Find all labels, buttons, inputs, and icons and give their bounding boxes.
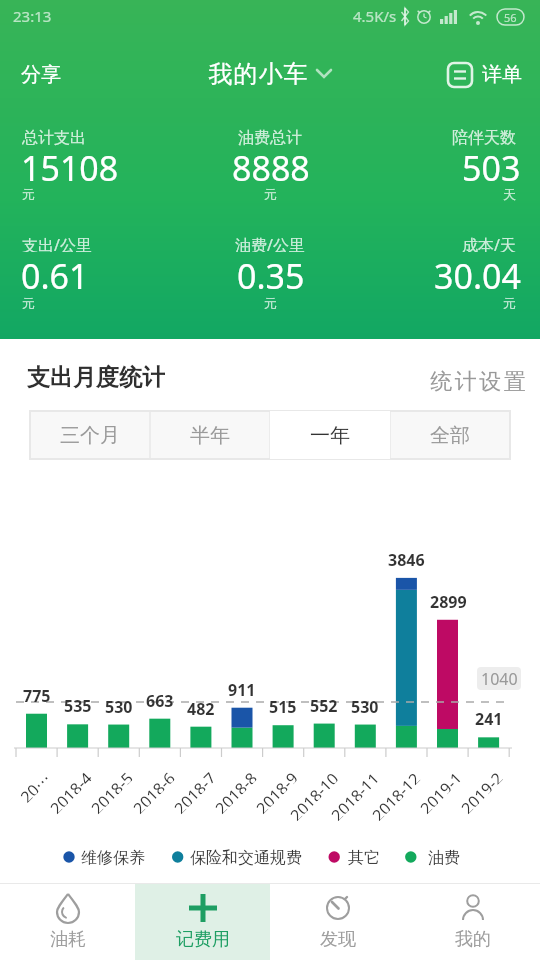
staticText: 总计支出 xyxy=(22,128,86,146)
button[interactable]: 我的小车 xyxy=(180,56,360,92)
staticText: 482 xyxy=(187,698,215,716)
staticText: 分享 xyxy=(21,62,61,87)
staticText: 油费 xyxy=(428,848,460,866)
staticText: 保险和交通规费 xyxy=(190,848,302,866)
staticText: 详单 xyxy=(482,62,522,87)
staticText: 1040 xyxy=(481,668,518,690)
staticText: 56 xyxy=(504,10,517,25)
staticText: 530 xyxy=(351,696,379,714)
staticText: 2018-6 xyxy=(128,767,176,815)
staticText: 元 xyxy=(503,295,516,311)
button[interactable]: 半年 xyxy=(150,411,270,459)
button[interactable]: 记费用 xyxy=(135,884,270,960)
staticText: 半年 xyxy=(190,423,230,448)
staticText: 530 xyxy=(105,696,133,714)
staticText: 元 xyxy=(264,186,277,202)
staticText: 支出/公里 xyxy=(22,234,92,252)
button[interactable]: 油耗 xyxy=(0,884,135,960)
staticText: 我的小车 xyxy=(208,59,308,89)
staticText: 663 xyxy=(146,690,174,708)
button[interactable]: 发现 xyxy=(270,884,405,960)
staticText: 15108 xyxy=(21,145,119,183)
staticText: 三个月 xyxy=(60,423,120,448)
button[interactable]: 统计设置 xyxy=(407,368,527,392)
staticText: 2018-12 xyxy=(367,767,422,822)
staticText: 2899 xyxy=(430,591,467,609)
staticText: 0.35 xyxy=(237,253,305,291)
staticText: 503 xyxy=(462,145,521,183)
staticText: 支出月度统计 xyxy=(27,363,165,389)
staticText: 记费用 xyxy=(176,928,230,951)
staticText: 8888 xyxy=(232,145,310,183)
staticText: 2019-1 xyxy=(415,767,463,815)
staticText: 一年 xyxy=(310,423,350,448)
staticText: 成本/天 xyxy=(462,234,516,252)
staticText: 2018-10 xyxy=(285,767,340,822)
staticText: 2018-4 xyxy=(45,767,93,815)
button[interactable]: 全部 xyxy=(390,411,510,459)
staticText: 天 xyxy=(503,186,516,202)
staticText: 维修保养 xyxy=(81,848,145,866)
staticText: 统计设置 xyxy=(429,368,527,392)
button[interactable]: 一年 xyxy=(270,411,390,459)
button[interactable] xyxy=(440,56,530,92)
staticText: 0.61 xyxy=(21,253,89,291)
staticText: 911 xyxy=(228,679,256,697)
staticText: 4.5K/s xyxy=(353,6,397,26)
staticText: 元 xyxy=(264,295,277,311)
staticText: 2018-5 xyxy=(86,767,134,815)
staticText: 发现 xyxy=(320,928,356,951)
staticText: 515 xyxy=(269,696,297,714)
staticText: 30.04 xyxy=(434,253,521,291)
staticText: 陪伴天数 xyxy=(452,128,516,146)
staticText: 2018-7 xyxy=(169,767,217,815)
staticText: 元 xyxy=(22,186,35,202)
staticText: 2019-2 xyxy=(456,767,504,815)
staticText: 2018-9 xyxy=(251,767,299,815)
staticText: 油耗 xyxy=(50,928,86,951)
staticText: 油费总计 xyxy=(238,128,302,146)
staticText: 全部 xyxy=(430,423,470,448)
staticText: 241 xyxy=(475,708,503,726)
staticText: 3846 xyxy=(388,549,425,567)
staticText: 535 xyxy=(64,695,92,713)
staticText: 552 xyxy=(310,695,338,713)
staticText: 元 xyxy=(22,295,35,311)
staticText: 其它 xyxy=(348,848,380,866)
staticText: 23:13 xyxy=(13,6,52,26)
staticText: 775 xyxy=(23,685,51,703)
button[interactable]: 三个月 xyxy=(30,411,150,459)
button[interactable]: 我的 xyxy=(405,884,540,960)
staticText: 油费/公里 xyxy=(235,234,305,252)
button[interactable]: 分享 xyxy=(21,61,101,87)
staticText: 2018-8 xyxy=(210,767,258,815)
staticText: 20⋯ xyxy=(16,767,52,803)
staticText: 2018-11 xyxy=(326,767,381,822)
staticText: 我的 xyxy=(455,928,491,951)
